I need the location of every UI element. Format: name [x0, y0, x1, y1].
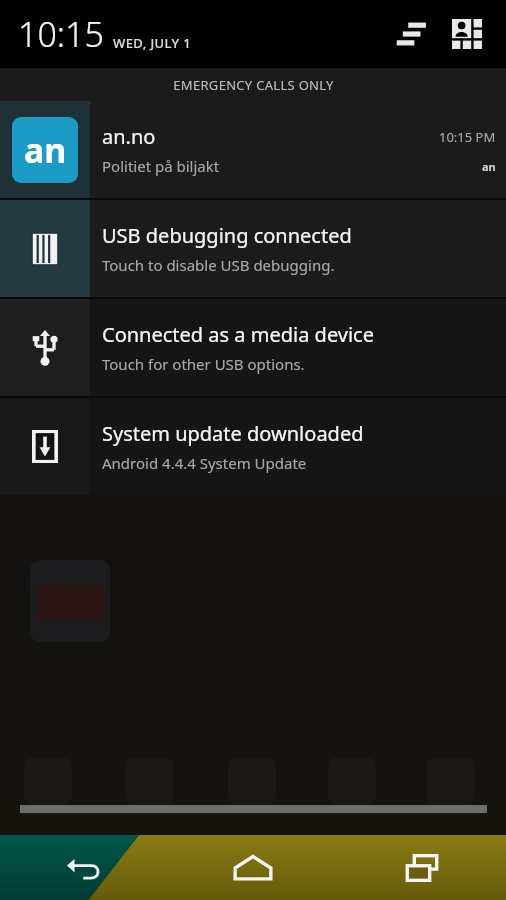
button[interactable]: Recent apps	[337, 835, 506, 900]
button[interactable]: USB debugging connected	[0, 200, 506, 297]
staticText: Politiet på biljakt	[102, 156, 220, 176]
button[interactable]: Quick settings	[440, 7, 494, 61]
staticText: 10:15 PM	[439, 128, 496, 146]
button[interactable]: Connected as a media device	[0, 299, 506, 396]
staticText: Connected as a media device	[102, 321, 374, 348]
button[interactable]: Back	[0, 835, 168, 900]
staticText: 10:15	[18, 11, 104, 57]
button[interactable]: Home	[168, 835, 337, 900]
staticText: Android 4.4.4 System Update	[102, 453, 307, 473]
button[interactable]: System update downloaded	[0, 398, 506, 495]
staticText: an.no	[102, 123, 156, 150]
staticText: System update downloaded	[102, 420, 364, 447]
staticText: USB debugging connected	[102, 222, 352, 249]
staticText: Touch for other USB options.	[102, 354, 305, 374]
staticText: WED, JULY 1	[113, 34, 192, 52]
staticText: an	[482, 159, 496, 174]
staticText: Touch to disable USB debugging.	[102, 255, 335, 275]
staticText: EMERGENCY CALLS ONLY	[173, 76, 334, 94]
button[interactable]: Clear all notifications	[386, 7, 440, 61]
button[interactable]: an.no notification	[0, 101, 506, 198]
staticText: an	[24, 127, 67, 173]
